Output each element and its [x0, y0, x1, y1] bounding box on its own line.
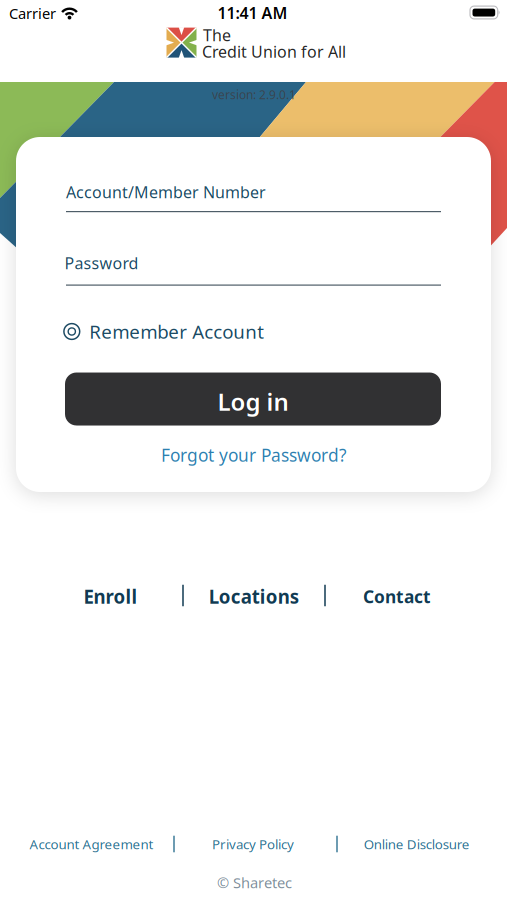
staticText: version: 2.9.0.1: [212, 86, 296, 102]
button[interactable]: Account Agreement: [29, 835, 153, 853]
button[interactable]: Locations: [209, 584, 299, 609]
staticText: Privacy Policy: [212, 835, 294, 853]
staticText: Credit Union for All: [202, 41, 346, 62]
staticText: Carrier: [9, 3, 56, 23]
staticText: 11:41 AM: [217, 2, 287, 23]
button[interactable]: Online Disclosure: [364, 835, 470, 853]
staticText: Forgot your Password?: [161, 443, 347, 466]
staticText: © Sharetec: [217, 873, 292, 892]
button[interactable]: Contact: [363, 585, 431, 608]
staticText: Remember Account: [89, 319, 264, 344]
staticText: Account Agreement: [29, 835, 153, 853]
button[interactable]: Privacy Policy: [212, 835, 294, 853]
button[interactable]: Forgot your Password?: [161, 443, 347, 466]
staticText: Locations: [209, 584, 299, 609]
staticText: The: [203, 24, 231, 46]
staticText: Contact: [363, 585, 431, 608]
staticText: Online Disclosure: [364, 835, 470, 853]
staticText: Password: [64, 252, 138, 274]
staticText: Log in: [217, 386, 288, 417]
button[interactable]: Log in: [65, 372, 441, 425]
staticText: Enroll: [83, 584, 137, 609]
button[interactable]: Enroll: [83, 584, 137, 609]
staticText: Account/Member Number: [66, 181, 266, 203]
button[interactable]: Remember Account: [63, 319, 264, 344]
